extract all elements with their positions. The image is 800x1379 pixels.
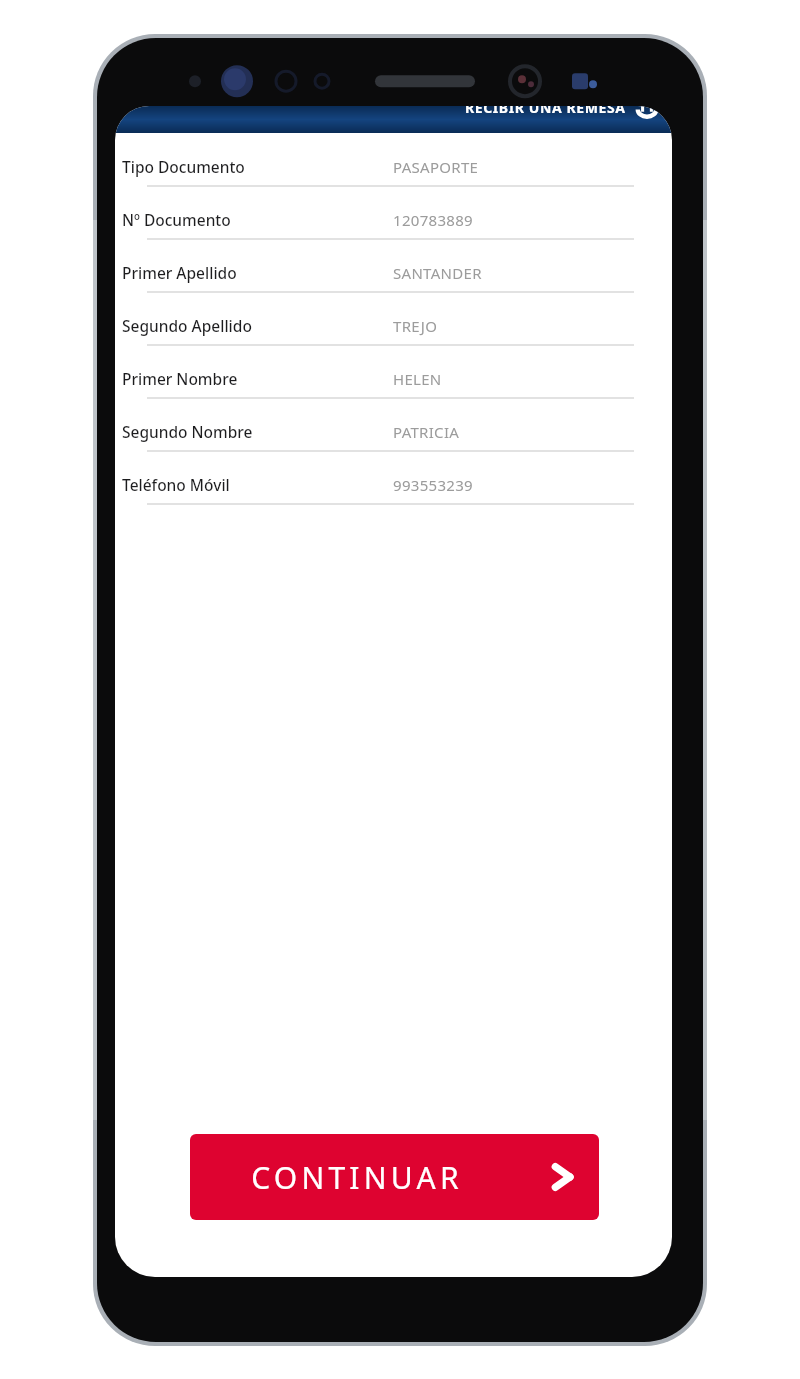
button[interactable]: Segundo Apellido	[115, 307, 672, 360]
staticText: Segundo Apellido	[122, 315, 252, 336]
staticText: Segundo Nombre	[122, 421, 253, 442]
button[interactable]: Tipo Documento	[115, 148, 672, 201]
staticText: Primer Nombre	[122, 368, 238, 389]
button[interactable]: Primer Apellido	[115, 254, 672, 307]
staticText: Tipo Documento	[122, 156, 245, 177]
staticText: HELEN	[393, 369, 442, 389]
staticText: Nº Documento	[122, 209, 231, 230]
button[interactable]: Primer Nombre	[115, 360, 672, 413]
other: Santander logo	[636, 106, 658, 118]
staticText: Primer Apellido	[122, 262, 237, 283]
staticText: TREJO	[393, 316, 438, 336]
staticText: 120783889	[393, 210, 473, 230]
staticText: RECIBIR UNA REMESA	[465, 106, 626, 117]
staticText: PATRICIA	[393, 422, 460, 442]
staticText: SANTANDER	[393, 263, 482, 283]
staticText: 993553239	[393, 475, 473, 495]
button[interactable]: Teléfono Móvil	[115, 466, 672, 519]
staticText: PASAPORTE	[393, 157, 479, 177]
staticText: Teléfono Móvil	[122, 474, 230, 495]
button[interactable]: Segundo Nombre	[115, 413, 672, 466]
staticText: CONTINUAR	[251, 1157, 463, 1198]
button[interactable]: CONTINUAR	[190, 1134, 599, 1220]
button[interactable]: Nº Documento	[115, 201, 672, 254]
